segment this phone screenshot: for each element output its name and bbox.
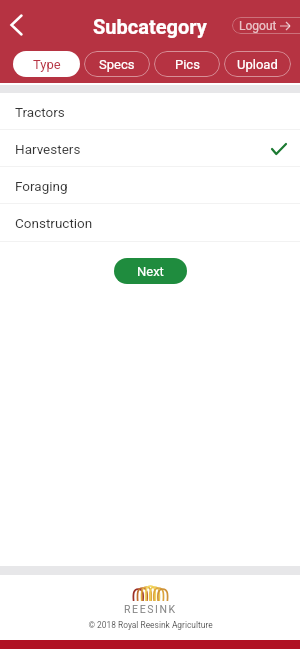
button[interactable]: Type [13,51,80,77]
button[interactable]: Logout [232,17,300,34]
staticText: Foraging [15,178,68,194]
staticText: © 2018 Royal Reesink Agriculture [88,620,213,630]
staticText: Subcategory [93,15,207,38]
staticText: Tractors [15,104,65,120]
button[interactable]: Harvesters [0,130,300,167]
button[interactable]: Back [4,10,28,40]
button[interactable]: Construction [0,204,300,242]
staticText: Upload [237,57,278,72]
staticText: Harvesters [15,141,81,157]
button[interactable]: Specs [84,51,150,77]
staticText: Type [33,57,61,72]
button[interactable]: Next [114,258,187,284]
button[interactable]: Foraging [0,167,300,204]
button[interactable]: Pics [154,51,220,77]
staticText: REESINK [124,603,177,615]
staticText: Construction [15,215,93,231]
staticText: Logout [239,19,277,33]
staticText: Pics [175,57,200,72]
staticText: Specs [99,57,135,72]
button[interactable]: Upload [224,51,291,77]
staticText: Next [137,264,164,279]
button[interactable]: Tractors [0,93,300,130]
